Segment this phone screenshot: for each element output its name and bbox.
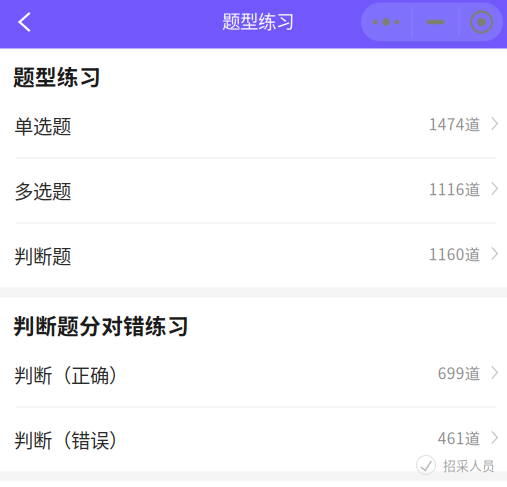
button[interactable]: 多选题	[0, 158, 507, 223]
staticText: 判断（错误）	[14, 425, 128, 453]
button[interactable]: 单选题	[0, 93, 507, 158]
staticText: 多选题	[14, 176, 71, 204]
staticText: 判断题分对错练习	[13, 309, 189, 340]
button[interactable]: More options	[361, 3, 503, 41]
staticText: 1474道	[429, 112, 480, 135]
button[interactable]: 判断（正确）	[0, 342, 507, 407]
staticText: 699道	[438, 361, 480, 384]
staticText: 单选题	[14, 111, 71, 139]
button[interactable]: Back	[0, 3, 48, 41]
staticText: 判断（正确）	[14, 360, 128, 388]
staticText: 题型练习	[222, 7, 294, 34]
button[interactable]: 判断题	[0, 223, 507, 287]
staticText: 461道	[438, 426, 480, 449]
staticText: 招采人员	[443, 456, 495, 474]
staticText: 题型练习	[13, 60, 101, 91]
staticText: 1116道	[429, 177, 480, 200]
button[interactable]: 判断（错误）	[0, 407, 507, 471]
staticText: 1160道	[429, 242, 480, 265]
staticText: 判断题	[14, 241, 71, 269]
